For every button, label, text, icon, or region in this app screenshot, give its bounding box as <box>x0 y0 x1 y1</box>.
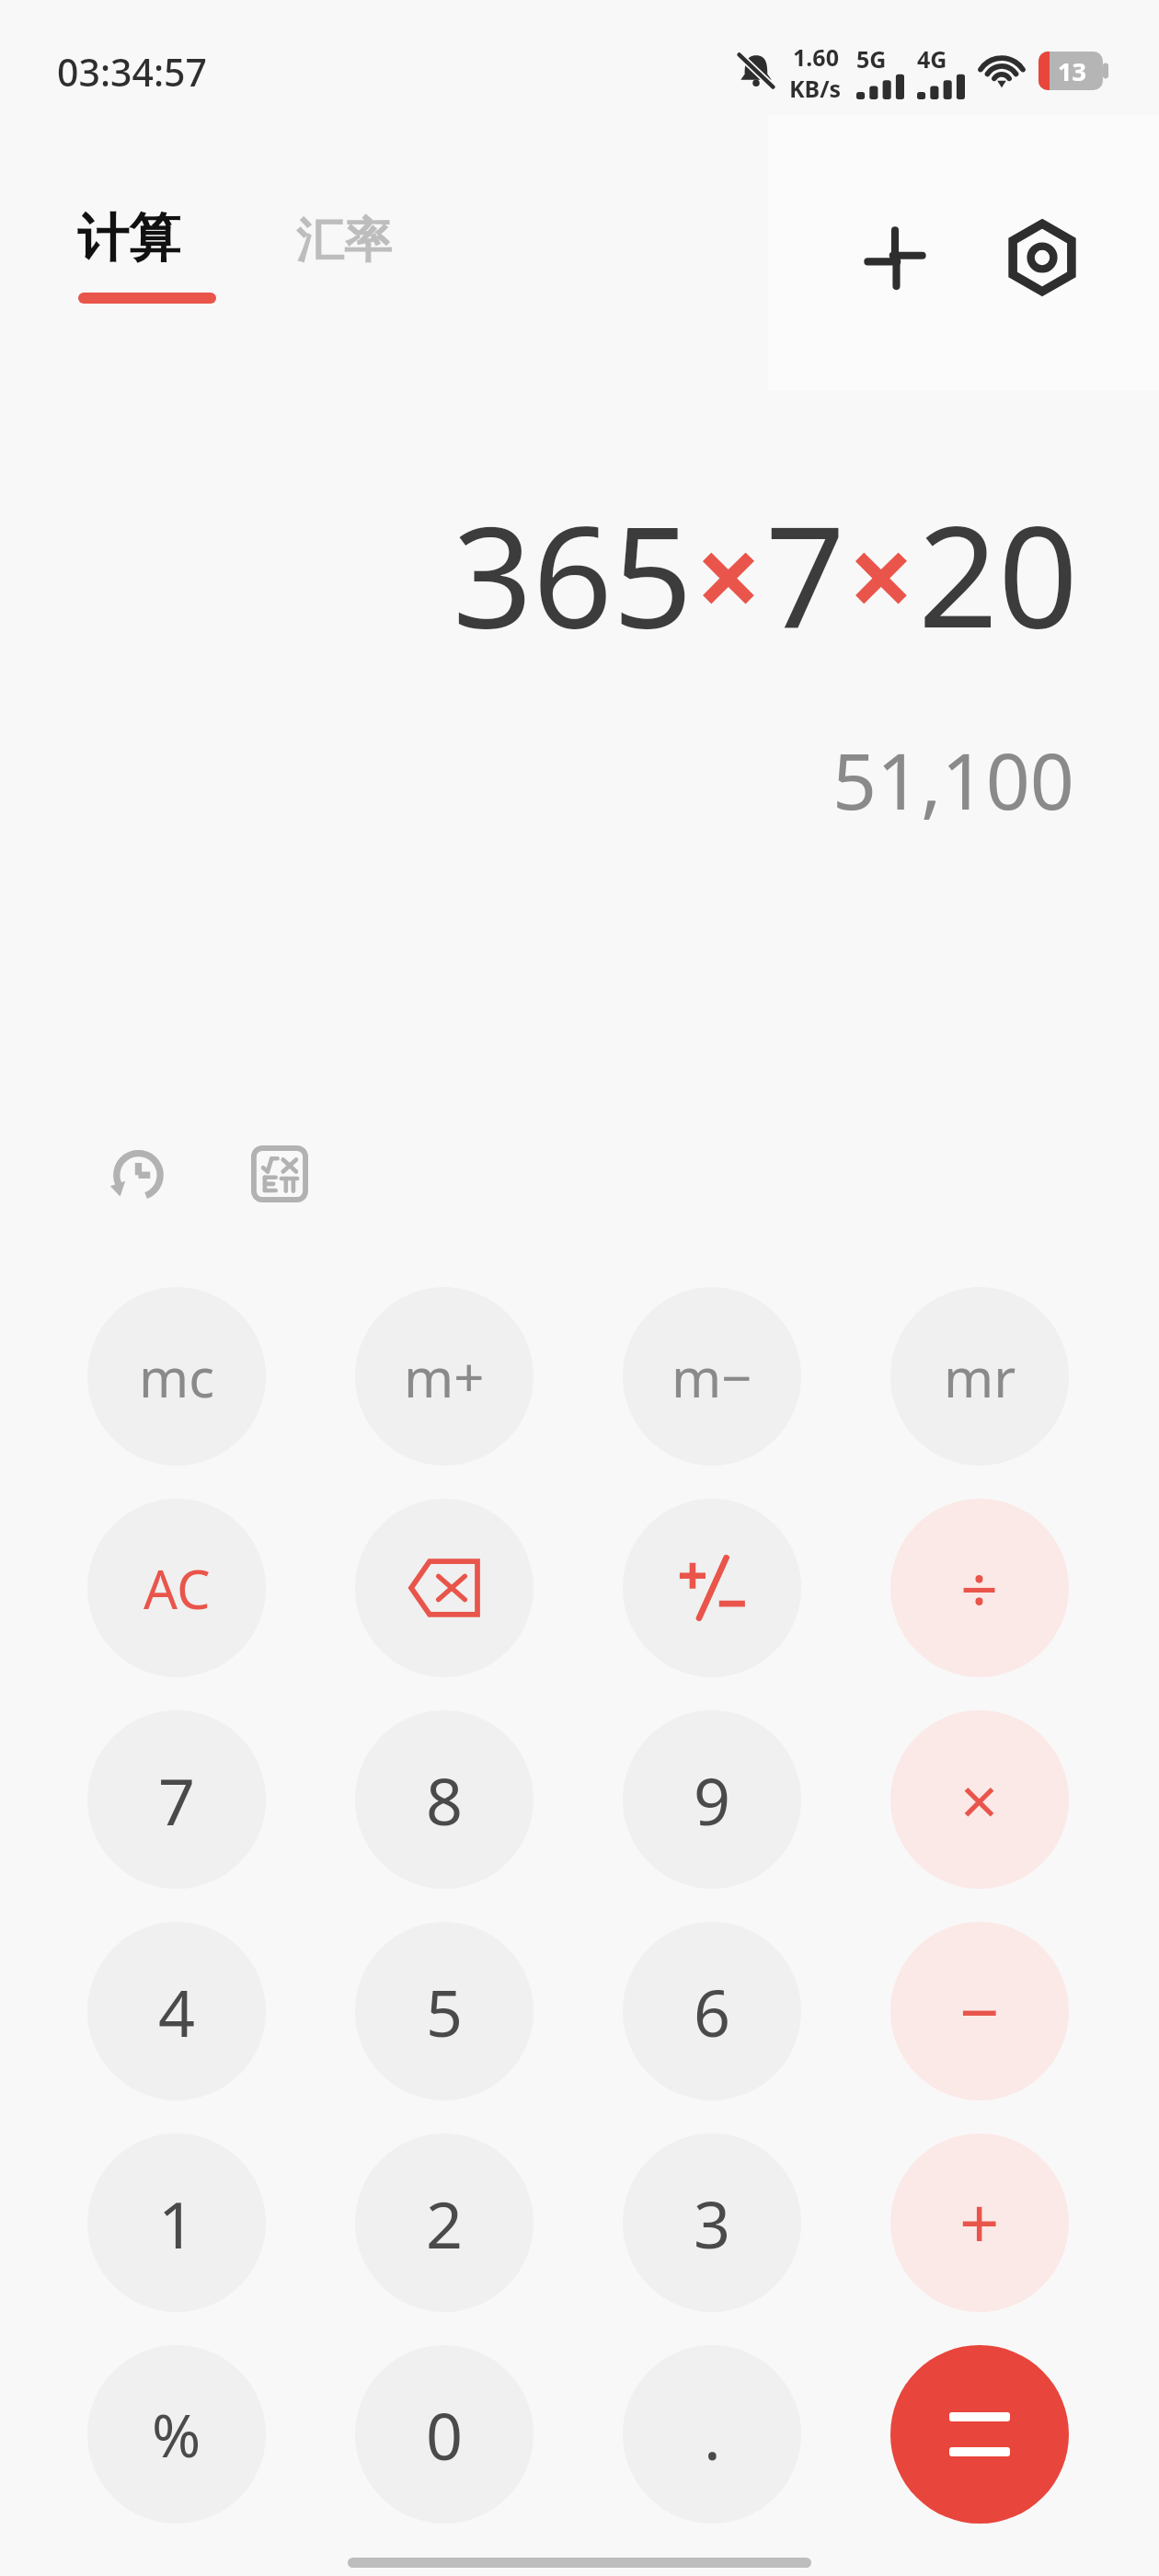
staticText: 1 <box>158 2179 196 2267</box>
staticText: × <box>848 495 915 653</box>
button[interactable]: 0 <box>355 2345 534 2524</box>
button[interactable]: 5 <box>355 1922 534 2100</box>
button[interactable]: 汇率 <box>276 206 451 316</box>
staticText: 2 <box>426 2179 464 2267</box>
button[interactable]: Settings <box>978 193 1107 322</box>
staticText: m+ <box>404 1340 485 1413</box>
button[interactable]: 1 <box>87 2133 266 2312</box>
button[interactable]: m− <box>623 1287 801 1466</box>
button[interactable]: ÷ <box>890 1499 1069 1677</box>
staticText: 4 <box>158 1968 196 2055</box>
button[interactable]: Floating window <box>831 193 959 322</box>
staticText: + <box>959 2175 1000 2271</box>
staticText: 5 <box>426 1968 464 2055</box>
button[interactable]: Scientific calculator <box>226 1121 332 1226</box>
button[interactable]: Toggle sign <box>623 1499 801 1677</box>
button[interactable]: . <box>623 2345 801 2524</box>
staticText: ÷ <box>960 1543 999 1633</box>
button[interactable]: 8 <box>355 1710 534 1889</box>
staticText: 9 <box>694 1756 731 1844</box>
staticText: mr <box>944 1340 1016 1413</box>
staticText: AC <box>143 1552 211 1625</box>
staticText: 13 <box>1058 54 1086 88</box>
button[interactable]: % <box>87 2345 266 2524</box>
button[interactable]: + <box>890 2133 1069 2312</box>
staticText: 03:34:57 <box>57 46 208 98</box>
staticText: 6 <box>694 1968 731 2055</box>
staticText: 1.60 <box>793 41 839 73</box>
staticText: 7 <box>158 1756 196 1844</box>
staticText: 20 <box>918 478 1078 669</box>
staticText: 计算 <box>77 206 180 271</box>
staticText: 7 <box>765 478 845 669</box>
staticText: 4G <box>917 43 947 75</box>
staticText: 8 <box>426 1756 464 1844</box>
button[interactable]: mr <box>890 1287 1069 1466</box>
button[interactable]: 3 <box>623 2133 801 2312</box>
staticText: 3 <box>694 2179 731 2267</box>
button[interactable]: − <box>890 1922 1069 2100</box>
staticText: mc <box>139 1340 215 1413</box>
button[interactable]: 计算 <box>55 206 239 335</box>
staticText: × <box>960 1754 999 1845</box>
button[interactable]: 4 <box>87 1922 266 2100</box>
button[interactable] <box>890 2345 1069 2524</box>
staticText: 51,100 <box>832 727 1074 832</box>
button[interactable]: 6 <box>623 1922 801 2100</box>
button[interactable]: AC <box>87 1499 266 1677</box>
staticText: × <box>695 495 763 653</box>
staticText: 汇率 <box>296 211 392 271</box>
button[interactable]: 9 <box>623 1710 801 1889</box>
staticText: KB/s <box>789 73 842 100</box>
staticText: 365 <box>453 478 693 669</box>
staticText: 0 <box>426 2391 464 2478</box>
staticText: . <box>704 2391 721 2478</box>
button[interactable]: Backspace <box>355 1499 534 1677</box>
staticText: − <box>959 1963 1000 2059</box>
button[interactable]: × <box>890 1710 1069 1889</box>
button[interactable]: mc <box>87 1287 266 1466</box>
button[interactable]: 7 <box>87 1710 266 1889</box>
staticText: m− <box>671 1340 752 1413</box>
button[interactable]: m+ <box>355 1287 534 1466</box>
button[interactable]: 2 <box>355 2133 534 2312</box>
staticText: 5G <box>856 43 887 75</box>
staticText: % <box>152 2395 201 2475</box>
button[interactable]: History <box>81 1121 187 1226</box>
